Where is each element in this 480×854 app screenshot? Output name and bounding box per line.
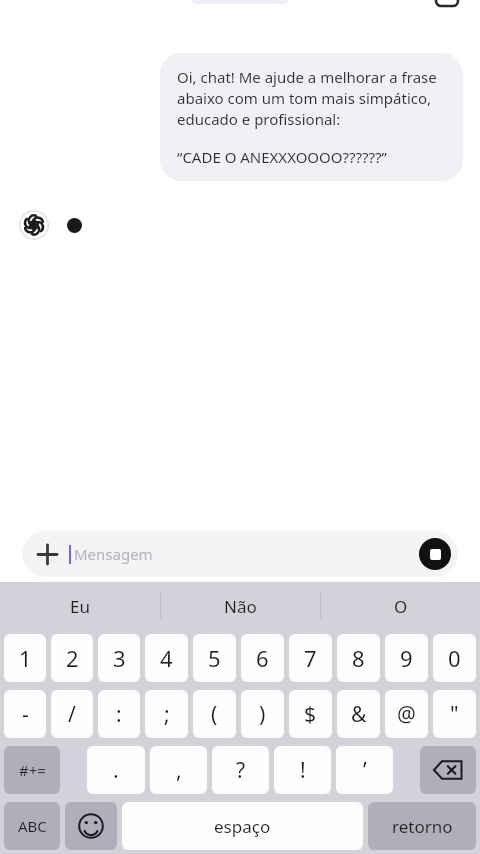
button[interactable]: !: [274, 746, 331, 794]
staticText: 2: [66, 643, 79, 673]
button[interactable]: Add attachment: [22, 531, 458, 577]
staticText: .: [113, 756, 119, 785]
button[interactable]: $: [289, 690, 332, 738]
staticText: @: [397, 700, 416, 729]
staticText: 0: [448, 643, 461, 673]
staticText: O: [394, 595, 408, 618]
button[interactable]: 6: [241, 634, 284, 682]
staticText: ABC: [18, 816, 47, 836]
button[interactable]: ": [433, 690, 476, 738]
staticText: Não: [224, 595, 257, 618]
button[interactable]: Não: [161, 582, 320, 630]
staticText: &: [351, 700, 367, 729]
staticText: $: [304, 700, 317, 729]
button[interactable]: ABC: [4, 802, 60, 850]
staticText: :: [116, 700, 122, 729]
button[interactable]: O: [321, 582, 480, 630]
button[interactable]: -: [4, 690, 46, 738]
staticText: ’: [363, 756, 367, 785]
button[interactable]: 5: [193, 634, 236, 682]
button[interactable]: espaço: [122, 802, 363, 850]
other: Emoji: [78, 813, 104, 839]
button[interactable]: 0: [433, 634, 476, 682]
button[interactable]: ;: [145, 690, 188, 738]
button[interactable]: ’: [336, 746, 393, 794]
button[interactable]: 9: [385, 634, 428, 682]
button[interactable]: Backspace: [420, 746, 476, 794]
staticText: !: [300, 756, 306, 785]
button[interactable]: ?: [212, 746, 269, 794]
button[interactable]: 3: [98, 634, 140, 682]
staticText: ): [259, 700, 266, 729]
button[interactable]: :: [98, 690, 140, 738]
staticText: 4: [160, 643, 173, 673]
button[interactable]: Emoji: [65, 802, 117, 850]
staticText: Oi, chat! Me ajude a melhorar a frase ab…: [177, 67, 446, 130]
button[interactable]: ,: [150, 746, 207, 794]
button[interactable]: Stop generating: [419, 538, 451, 570]
button[interactable]: Eu: [0, 582, 160, 630]
staticText: /: [68, 700, 76, 729]
staticText: 8: [352, 643, 365, 673]
other: Backspace: [433, 759, 463, 781]
staticText: 1: [19, 643, 32, 673]
button[interactable]: 7: [289, 634, 332, 682]
button[interactable]: &: [337, 690, 380, 738]
button[interactable]: ): [241, 690, 284, 738]
staticText: Eu: [70, 595, 90, 618]
button[interactable]: 4: [145, 634, 188, 682]
staticText: “CADE O ANEXXXOOOO??????”: [177, 147, 387, 167]
staticText: 3: [113, 643, 126, 673]
staticText: (: [211, 700, 218, 729]
staticText: -: [22, 700, 29, 729]
button[interactable]: @: [385, 690, 428, 738]
staticText: ": [450, 700, 459, 729]
staticText: ;: [164, 700, 170, 729]
staticText: espaço: [214, 815, 271, 838]
button[interactable]: (: [193, 690, 236, 738]
button[interactable]: ChatGPT 4: [190, 0, 290, 4]
button[interactable]: New chat: [436, 0, 458, 6]
staticText: 6: [256, 643, 269, 673]
staticText: retorno: [392, 815, 453, 838]
button[interactable]: Oi, chat! Me ajude a melhorar a frase ab…: [160, 53, 463, 181]
button[interactable]: Add attachment: [33, 540, 61, 568]
staticText: 9: [400, 643, 413, 673]
button[interactable]: .: [87, 746, 145, 794]
button[interactable]: retorno: [368, 802, 476, 850]
staticText: 7: [304, 643, 317, 673]
staticText: ?: [236, 756, 246, 785]
staticText: ,: [176, 756, 182, 785]
button[interactable]: 8: [337, 634, 380, 682]
staticText: #+=: [19, 760, 46, 780]
button[interactable]: 2: [51, 634, 93, 682]
staticText: Mensagem: [74, 544, 153, 564]
button[interactable]: 1: [4, 634, 46, 682]
button[interactable]: /: [51, 690, 93, 738]
staticText: 5: [208, 643, 221, 673]
button[interactable]: #+=: [4, 746, 60, 794]
